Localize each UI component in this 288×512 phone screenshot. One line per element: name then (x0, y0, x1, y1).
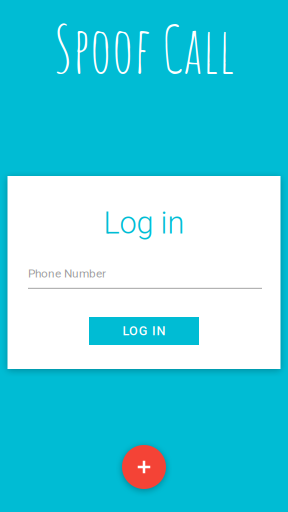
button[interactable]: New call (122, 445, 166, 489)
staticText: Log in (103, 205, 184, 241)
staticText: Phone Number (28, 266, 106, 280)
staticText: LOG IN (122, 324, 165, 338)
button[interactable]: Phone Number (28, 266, 262, 289)
button[interactable]: LOG IN (89, 317, 199, 345)
staticText: Spoof Call (53, 8, 234, 89)
